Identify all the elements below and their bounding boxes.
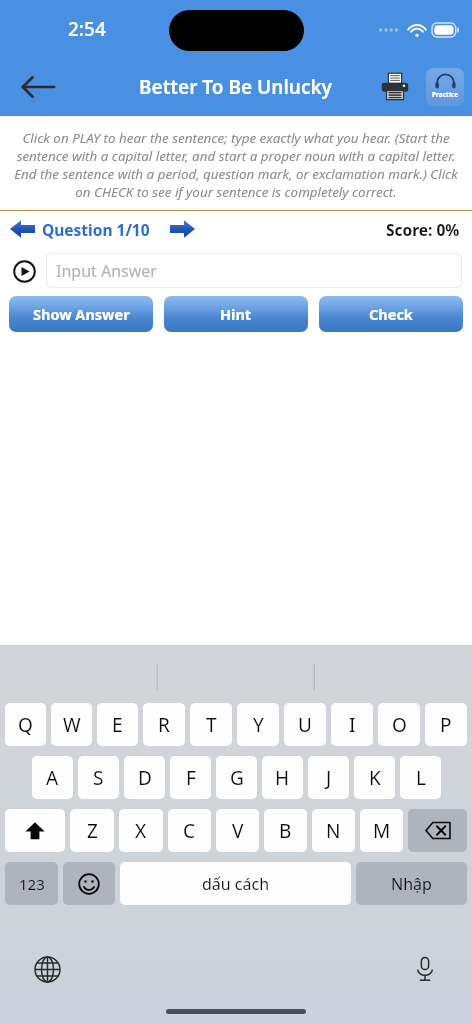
staticText: dấu cách xyxy=(202,873,270,895)
button[interactable]: L xyxy=(400,756,441,799)
button[interactable]: Previous question xyxy=(6,214,38,244)
button[interactable]: Question 1/10 xyxy=(42,219,150,240)
button[interactable]: O xyxy=(378,703,420,746)
staticText: 2:54 xyxy=(68,16,106,42)
button[interactable]: V xyxy=(216,809,259,852)
button[interactable]: M xyxy=(360,809,403,852)
button[interactable]: G xyxy=(216,756,257,799)
button[interactable]: Voice input xyxy=(408,952,442,986)
staticText: D xyxy=(138,765,152,791)
staticText: M xyxy=(373,818,391,844)
staticText: E xyxy=(112,712,123,738)
button[interactable]: Change keyboard language xyxy=(30,952,64,986)
button[interactable]: H xyxy=(262,756,303,799)
button[interactable]: U xyxy=(284,703,326,746)
button[interactable]: Z xyxy=(70,809,114,852)
staticText: K xyxy=(369,765,381,791)
button[interactable]: Print xyxy=(375,67,415,107)
staticText: A xyxy=(46,765,59,791)
button[interactable]: Check xyxy=(319,296,463,332)
button[interactable]: Play xyxy=(8,255,40,287)
button[interactable]: Show Answer xyxy=(9,296,153,332)
staticText: O xyxy=(392,712,407,738)
button[interactable]: Hint xyxy=(164,296,308,332)
staticText: H xyxy=(275,765,290,791)
button[interactable]: F xyxy=(170,756,211,799)
staticText: Better To Be Unlucky xyxy=(139,74,333,100)
staticText: G xyxy=(230,765,244,791)
staticText: 123 xyxy=(19,874,45,894)
staticText: S xyxy=(93,765,104,791)
button[interactable]: X xyxy=(119,809,163,852)
button[interactable]: J xyxy=(308,756,349,799)
staticText: R xyxy=(158,712,170,738)
staticText: Nhập xyxy=(391,873,432,895)
staticText: Y xyxy=(253,712,264,738)
button[interactable]: dấu cách xyxy=(120,862,351,905)
staticText: Hint xyxy=(220,304,252,324)
staticText: Check xyxy=(369,304,413,324)
button[interactable]: W xyxy=(51,703,92,746)
button[interactable]: Nhập xyxy=(356,862,467,905)
button[interactable]: S xyxy=(78,756,119,799)
staticText: Click on PLAY to hear the sentence; type… xyxy=(8,129,464,201)
button[interactable]: N xyxy=(312,809,355,852)
button[interactable]: B xyxy=(264,809,307,852)
staticText: Z xyxy=(87,818,98,844)
staticText: J xyxy=(326,765,332,791)
button[interactable]: Emoji xyxy=(63,862,115,905)
staticText: W xyxy=(63,712,81,738)
button[interactable]: Back xyxy=(20,69,56,105)
staticText: Q xyxy=(18,712,33,738)
staticText: F xyxy=(186,765,196,791)
button[interactable]: 123 xyxy=(5,862,58,905)
staticText: B xyxy=(279,818,292,844)
button[interactable]: R xyxy=(143,703,185,746)
button[interactable]: Next question xyxy=(166,214,198,244)
button[interactable]: Backspace xyxy=(408,809,467,852)
button[interactable]: E xyxy=(97,703,138,746)
button[interactable]: T xyxy=(190,703,232,746)
staticText: Score: 0% xyxy=(386,219,460,240)
staticText: Show Answer xyxy=(33,304,130,324)
staticText: X xyxy=(135,818,147,844)
button[interactable]: Q xyxy=(5,703,46,746)
staticText: Practice xyxy=(432,90,459,99)
button[interactable]: A xyxy=(32,756,73,799)
staticText: U xyxy=(298,712,312,738)
button[interactable]: Y xyxy=(237,703,279,746)
staticText: P xyxy=(440,712,452,738)
staticText: L xyxy=(416,765,426,791)
staticText: N xyxy=(326,818,341,844)
button[interactable]: K xyxy=(354,756,395,799)
staticText: I xyxy=(349,712,356,738)
button[interactable]: Shift xyxy=(5,809,65,852)
staticText: Input Answer xyxy=(56,260,157,282)
staticText: V xyxy=(232,818,244,844)
staticText: C xyxy=(183,818,196,844)
button[interactable]: D xyxy=(124,756,165,799)
button[interactable]: P xyxy=(425,703,467,746)
button[interactable]: I xyxy=(331,703,373,746)
button[interactable]: Input Answer xyxy=(46,253,462,288)
staticText: T xyxy=(206,712,217,738)
button[interactable]: Practice xyxy=(423,65,467,109)
button[interactable]: C xyxy=(168,809,211,852)
